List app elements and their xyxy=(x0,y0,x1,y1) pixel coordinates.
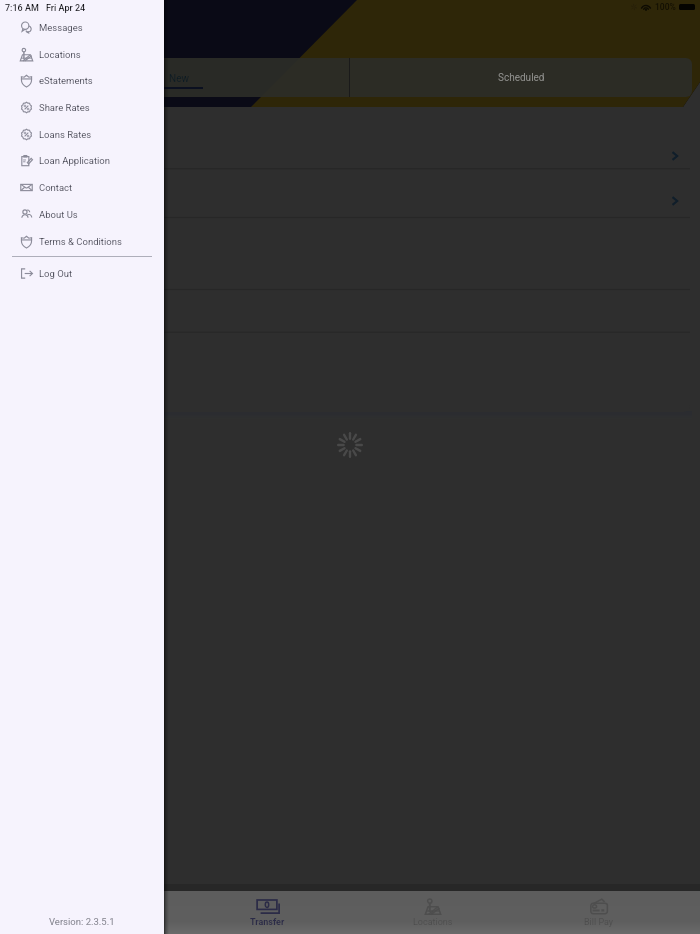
staticText: Fri Apr 24 xyxy=(46,3,86,14)
button[interactable] xyxy=(10,332,690,411)
button[interactable]: Loans Rates xyxy=(0,121,164,147)
button[interactable]: Locations xyxy=(350,891,516,934)
button[interactable]: Scheduled xyxy=(350,58,692,97)
button[interactable]: New xyxy=(8,58,349,97)
button[interactable]: Share Rates xyxy=(0,94,164,120)
staticText: Version: 2.3.5.1 xyxy=(49,916,115,927)
button[interactable]: Terms & Conditions xyxy=(0,228,164,254)
button[interactable]: Locations xyxy=(0,41,164,67)
staticText: Bill Pay xyxy=(584,917,614,928)
button[interactable]: Messages xyxy=(0,14,164,40)
staticText: Contact xyxy=(39,182,73,193)
staticText: Scheduled xyxy=(498,72,545,84)
button[interactable]: Loan Application xyxy=(0,147,164,173)
button[interactable]: Contact xyxy=(0,174,164,200)
button[interactable] xyxy=(10,289,690,332)
button[interactable] xyxy=(10,217,690,289)
staticText: Log Out xyxy=(39,268,73,279)
button[interactable]: About Us xyxy=(0,201,164,227)
staticText: About Us xyxy=(39,209,78,220)
button[interactable] xyxy=(10,169,690,218)
staticText: Loans Rates xyxy=(39,129,92,140)
staticText: Messages xyxy=(39,22,83,33)
staticText: New xyxy=(169,73,189,85)
other: Open details xyxy=(672,196,681,206)
button[interactable]: Bill Pay xyxy=(516,891,682,934)
button[interactable]: Log Out xyxy=(0,260,164,286)
other: Open details xyxy=(672,151,681,161)
staticText: Terms & Conditions xyxy=(39,236,122,247)
staticText: Loan Application xyxy=(39,155,111,166)
staticText: Transfer xyxy=(250,917,285,928)
staticText: Locations xyxy=(413,917,453,928)
staticText: 7:16 AM xyxy=(5,3,39,14)
button[interactable]: eStatements xyxy=(0,67,164,93)
staticText: 100% xyxy=(655,2,676,12)
staticText: Share Rates xyxy=(39,102,90,113)
button[interactable] xyxy=(10,107,690,169)
staticText: eStatements xyxy=(39,75,93,86)
staticText: Locations xyxy=(39,49,81,60)
button[interactable]: Transfer xyxy=(184,891,350,934)
